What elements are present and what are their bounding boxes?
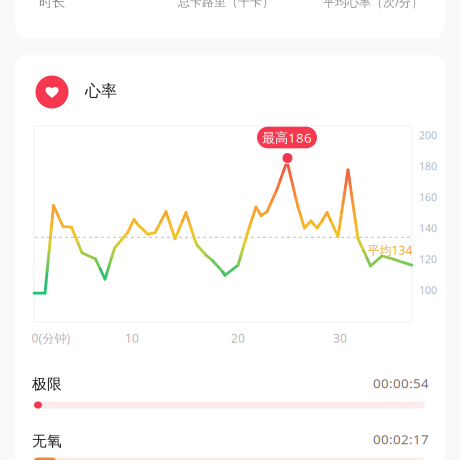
staticText: 100	[419, 283, 437, 297]
staticText: 总卡路里（千卡）	[178, 0, 274, 9]
staticText: 无氧	[32, 432, 62, 450]
staticText: 160	[419, 190, 437, 204]
staticText: 心率	[85, 81, 117, 101]
staticText: 180	[419, 159, 437, 173]
staticText: 30	[333, 330, 347, 346]
staticText: 0(分钟)	[31, 330, 70, 346]
staticText: 00:00:54	[373, 374, 429, 392]
staticText: 平均134	[367, 242, 412, 258]
staticText: 平均心率（次/分）	[323, 0, 423, 10]
staticText: 20	[231, 330, 245, 346]
staticText: 10	[125, 330, 139, 346]
staticText: 时长	[39, 0, 65, 10]
staticText: 00:02:17	[373, 430, 429, 448]
staticText: 200	[419, 128, 437, 142]
staticText: 最高186	[262, 129, 312, 146]
staticText: 140	[419, 221, 437, 235]
staticText: 120	[419, 252, 437, 266]
staticText: 极限	[32, 375, 62, 393]
